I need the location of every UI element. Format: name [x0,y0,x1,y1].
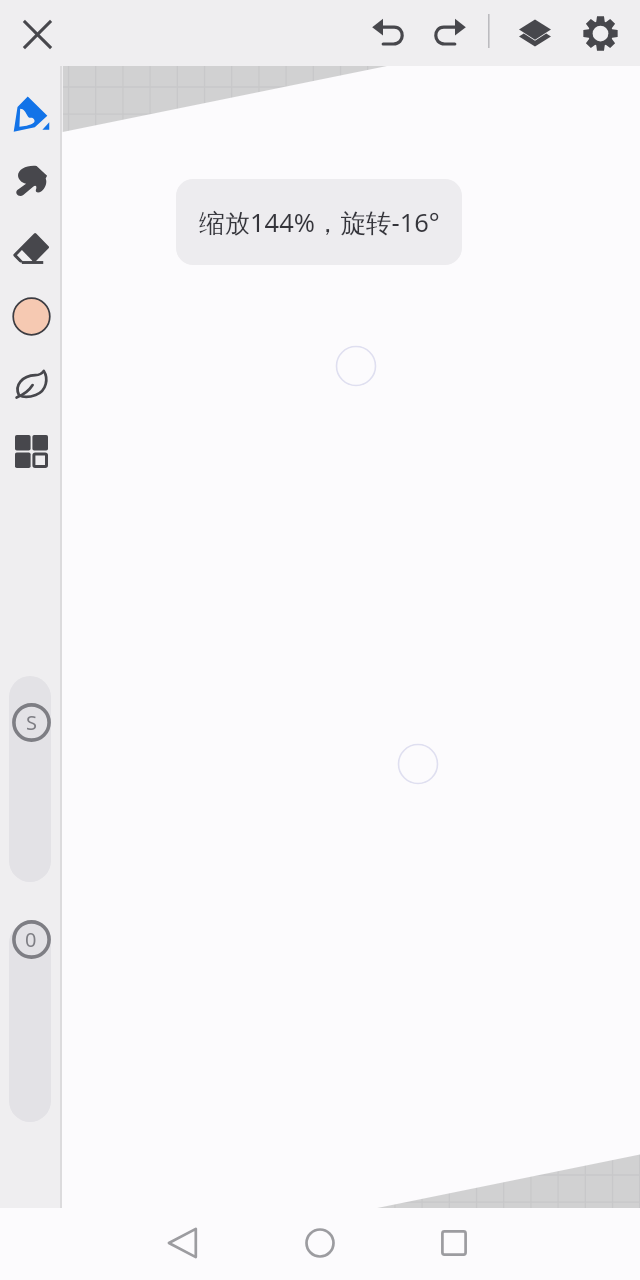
button[interactable]: Recents [426,1215,482,1271]
button[interactable]: Smudge [9,159,53,203]
button[interactable]: Pen [9,91,53,135]
button[interactable]: Opacity [9,922,51,1122]
button[interactable]: Back [155,1215,211,1271]
button[interactable]: Home [292,1215,348,1271]
button[interactable]: Undo [368,11,412,55]
button[interactable]: Colour [9,294,53,338]
button[interactable]: Eraser [9,227,53,271]
button[interactable]: Redo [426,11,470,55]
button[interactable]: Close [14,11,61,58]
button[interactable]: Layout tools [9,429,53,473]
button[interactable]: Settings [578,11,622,55]
staticText: 缩放144%，旋转-16° [199,205,440,240]
button[interactable]: Layers [513,11,557,55]
button[interactable]: Brush settings [9,362,53,406]
button[interactable]: Brush size [9,676,51,882]
staticText: 0 [25,926,37,953]
staticText: S [26,709,37,736]
